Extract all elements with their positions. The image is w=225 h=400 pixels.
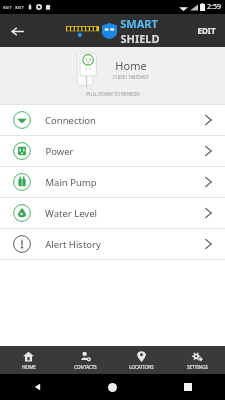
button[interactable]: Recents [150,374,225,400]
button[interactable]: Home [75,374,150,400]
button[interactable]: SETTINGS [169,346,225,374]
staticText: Main Pump [45,176,97,189]
button[interactable]: Water Level [0,198,225,228]
staticText: Power [45,145,74,158]
staticText: LOCATIONS [129,364,154,370]
staticText: EDIT [197,25,216,36]
button[interactable]: Back [0,374,75,400]
staticText: SETTINGS [187,364,208,370]
staticText: 84/7 [3,5,12,10]
staticText: 2:59 [207,2,221,12]
staticText: CONTACTS [74,364,97,370]
staticText: 21605116805493 [112,74,149,80]
button[interactable]: Power [0,136,225,166]
button[interactable]: CONTACTS [57,346,113,374]
button[interactable]: Alert History [0,229,225,259]
button[interactable]: Back [4,18,30,44]
button[interactable]: HOME [0,346,57,374]
staticText: SHIELD [120,31,160,46]
button[interactable]: LOCATIONS [113,346,169,374]
staticText: Home [115,58,147,73]
staticText: SMART [120,16,158,31]
button[interactable]: Connection [0,105,225,135]
button[interactable]: EDIT [192,21,221,40]
staticText: HOME [22,364,36,370]
staticText: Alert History [45,238,101,251]
staticText: Connection [45,114,96,127]
button[interactable]: Main Pump [0,167,225,197]
staticText: PULL DOWN TO REFRESH [86,91,140,97]
staticText: 84/7 [15,5,24,10]
staticText: Water Level [45,207,97,220]
